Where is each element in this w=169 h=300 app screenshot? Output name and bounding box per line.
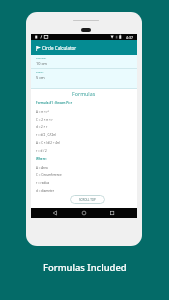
staticText: A = C × (d/2 ÷ 4π) xyxy=(36,141,60,145)
staticText: SCROLL TOP xyxy=(79,198,96,202)
button[interactable]: Radius xyxy=(31,69,137,86)
staticText: Circle Calculator xyxy=(42,45,77,51)
staticText: r = radius xyxy=(36,181,50,185)
staticText: A = π × r² xyxy=(36,110,49,114)
staticText: Formulas Included xyxy=(43,261,127,274)
button[interactable]: Open navigation xyxy=(33,43,43,53)
staticText: d = diameter xyxy=(36,189,54,193)
staticText: Formulas xyxy=(72,90,96,97)
staticText: 10 cm xyxy=(36,61,47,66)
staticText: Diameter xyxy=(36,57,47,60)
staticText: C = Circumference xyxy=(36,173,62,177)
staticText: r = d / 2 xyxy=(36,149,47,153)
staticText: C = 2 × π × r xyxy=(36,118,53,122)
staticText: Radius xyxy=(36,71,44,74)
staticText: 5 cm xyxy=(36,75,45,80)
staticText: A = Area xyxy=(36,166,48,170)
staticText: Formula #1 : Known Pi=r xyxy=(36,101,73,105)
staticText: d = 2 × r xyxy=(36,125,48,129)
staticText: r = d/2 , C/(2π) xyxy=(36,133,57,137)
staticText: 4:37 xyxy=(126,35,133,40)
button[interactable]: Diameter xyxy=(31,55,137,72)
button[interactable]: SCROLL TOP xyxy=(70,195,105,204)
staticText: Where: xyxy=(36,157,47,161)
